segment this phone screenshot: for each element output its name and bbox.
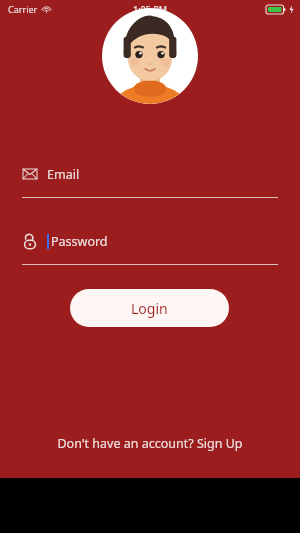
staticText: Login xyxy=(131,299,168,318)
staticText: Email xyxy=(47,166,80,183)
button[interactable]: Email xyxy=(22,160,278,198)
button[interactable]: Password xyxy=(22,227,278,265)
staticText: 1:05 PM xyxy=(133,3,167,15)
staticText: Password xyxy=(51,233,108,250)
staticText: Don't have an account? Sign Up xyxy=(57,435,243,452)
staticText: Carrier xyxy=(8,3,38,15)
button[interactable]: Don't have an account? Sign Up xyxy=(0,430,300,456)
button[interactable]: Login xyxy=(70,289,229,327)
